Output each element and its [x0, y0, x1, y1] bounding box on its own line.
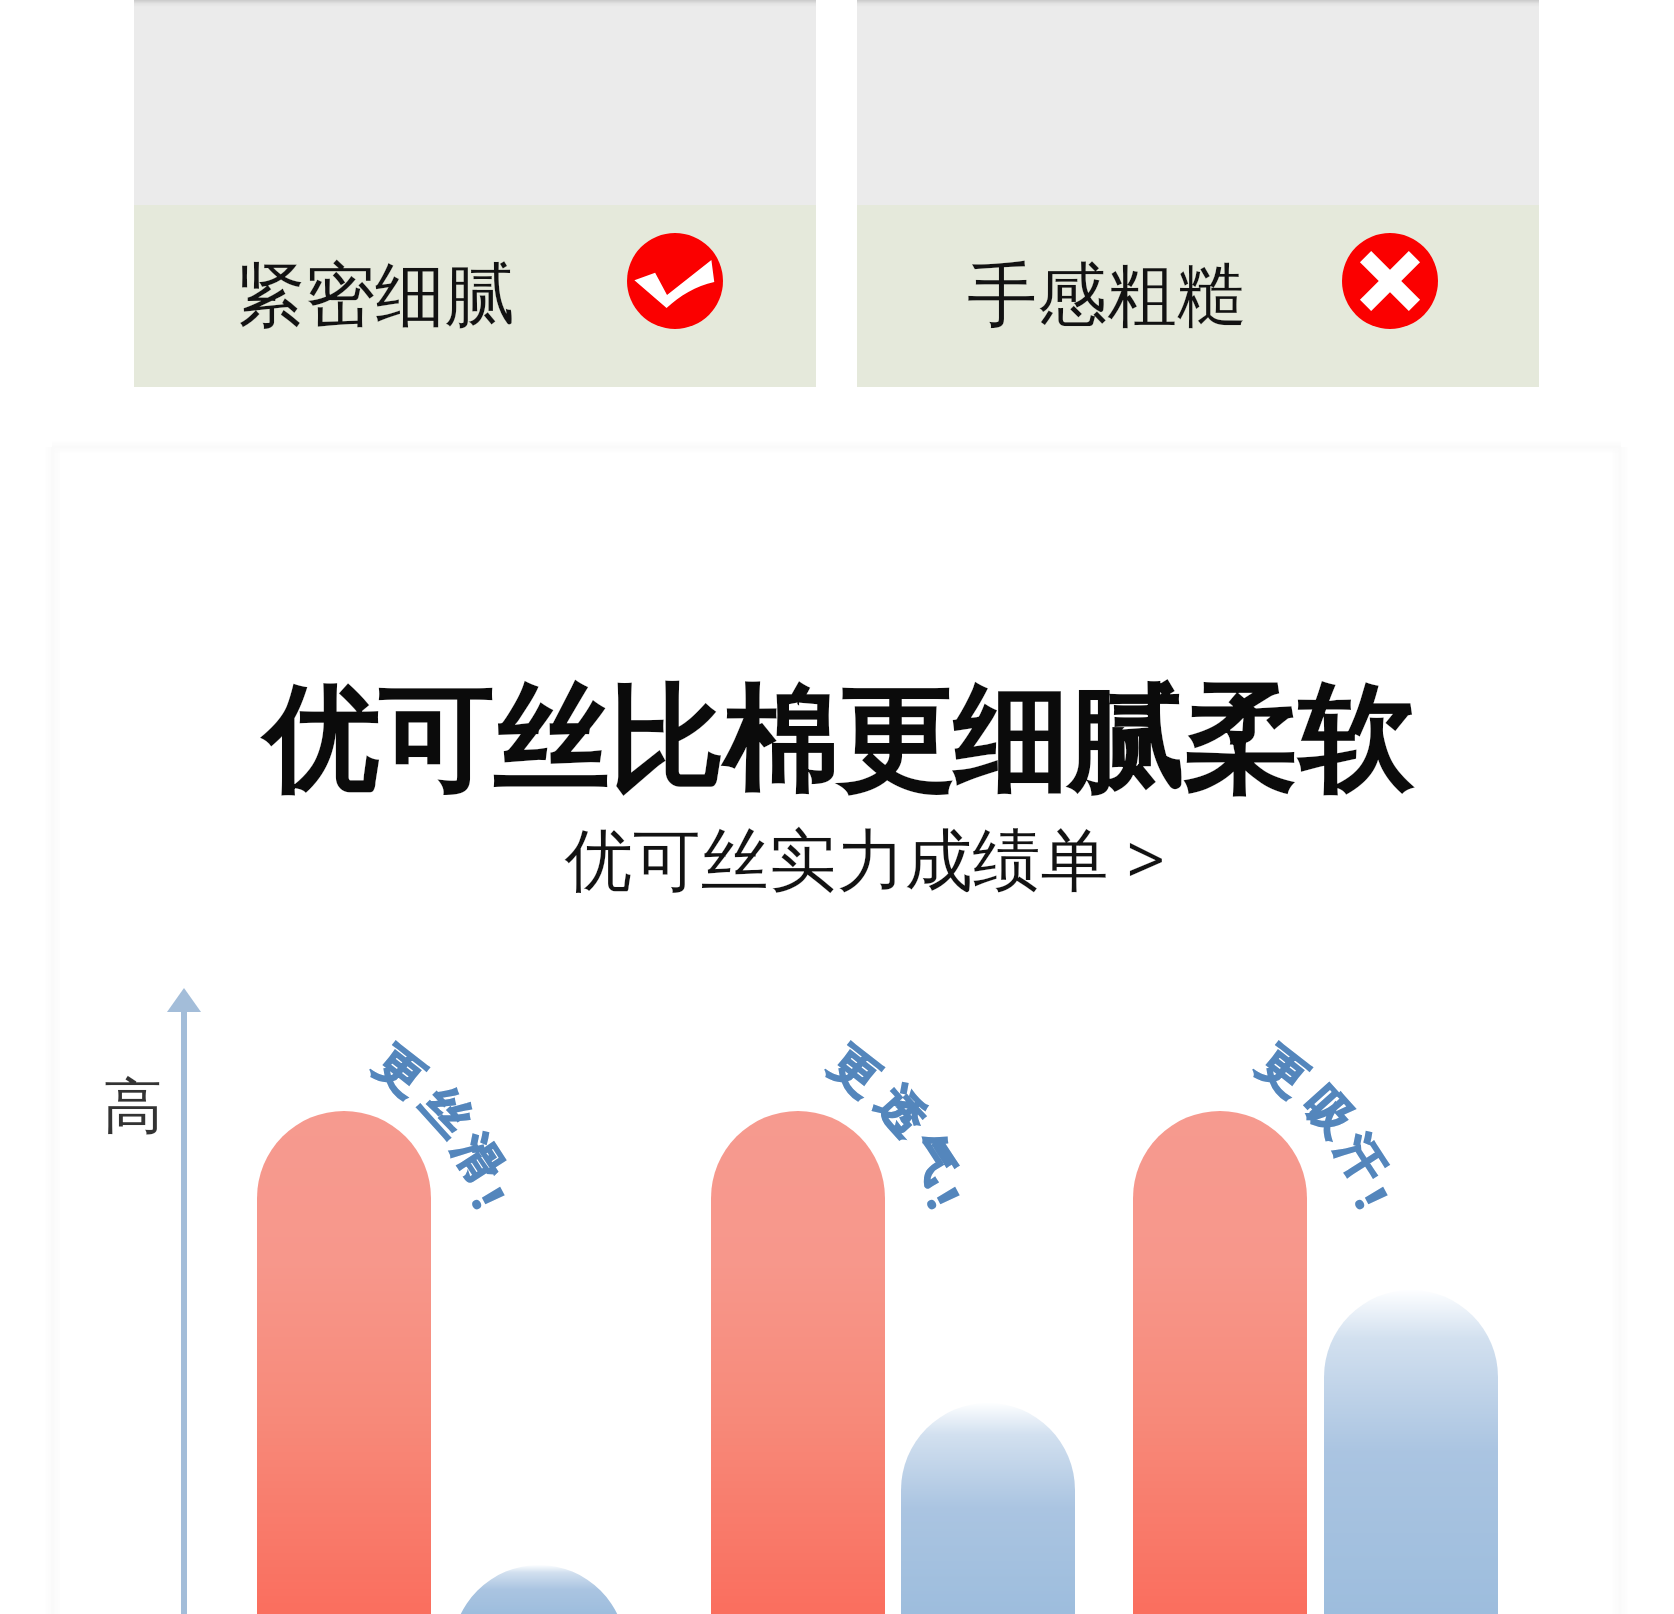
staticText: 更 [1246, 1035, 1318, 1109]
staticText: 优可丝比棉更细腻柔软 [0, 669, 1674, 814]
staticText: 滑 [440, 1125, 514, 1195]
staticText: 高 [103, 1069, 163, 1145]
button[interactable]: 优可丝实力成绩单 > [28, 811, 1674, 904]
staticText: 吸 [1291, 1076, 1365, 1149]
staticText: 更 [363, 1035, 435, 1109]
staticText: 紧密细腻 [235, 252, 515, 340]
button[interactable]: 紧密细腻 [134, 0, 816, 387]
button[interactable]: 手感粗糙 [857, 0, 1539, 387]
staticText: 更 [818, 1035, 890, 1109]
staticText: 透 [863, 1076, 937, 1149]
other: Drawback [1342, 233, 1438, 329]
staticText: 气 [895, 1125, 969, 1195]
staticText: 丝 [408, 1076, 482, 1149]
other: Advantage [627, 233, 723, 329]
staticText: ! [1341, 1177, 1403, 1219]
staticText: ! [913, 1177, 975, 1219]
staticText: 手感粗糙 [967, 252, 1247, 340]
staticText: 汗 [1323, 1125, 1397, 1195]
staticText: ! [458, 1177, 520, 1219]
